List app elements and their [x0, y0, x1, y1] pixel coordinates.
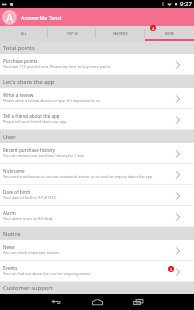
button[interactable]: Date of birth [0, 185, 194, 206]
button[interactable]: Back [49, 295, 63, 309]
staticText: Your alarm is set on 8:0 daily. [3, 216, 54, 221]
staticText: User [3, 133, 16, 141]
button[interactable]: TOP 30 [48, 26, 96, 41]
staticText: Nickname [3, 168, 25, 174]
staticText: Please write a review about our app. It'… [3, 98, 101, 103]
button[interactable]: Purchase points [0, 54, 194, 75]
staticText: Total points [3, 44, 35, 52]
staticText: You need a nickname to use our occasiona… [3, 174, 154, 179]
staticText: Write a review [3, 92, 34, 98]
staticText: AnswerMe Tarot [21, 14, 62, 21]
staticText: News [3, 244, 15, 250]
button[interactable]: Recent apps [131, 295, 145, 309]
button[interactable]: News [0, 240, 194, 261]
button[interactable]: Write a review [0, 88, 194, 109]
button[interactable]: MORE [145, 26, 194, 41]
button[interactable]: FAVORITE [96, 26, 145, 41]
staticText: ALL [21, 32, 27, 36]
staticText: Let's share the app [3, 78, 55, 86]
staticText: You have 110 point(s) now. Please tap he… [3, 64, 112, 69]
staticText: Purchase points [3, 58, 38, 64]
staticText: 4 [152, 26, 155, 31]
staticText: Events [3, 265, 18, 271]
staticText: Customer support [3, 284, 53, 292]
button[interactable]: Events [0, 261, 194, 282]
staticText: Your date of birth is 9/14/1974. [3, 195, 57, 200]
button[interactable]: Alarm [0, 206, 194, 227]
staticText: You can check important notices. [3, 250, 61, 255]
button[interactable]: Recent purchase history [0, 143, 194, 164]
staticText: FAVORITE [113, 32, 128, 36]
staticText: You can review your purchase history for… [3, 153, 85, 158]
button[interactable]: Tell a friend about the app [0, 109, 194, 130]
button[interactable]: ALL [0, 26, 48, 41]
staticText: MORE [165, 32, 175, 36]
staticText: You can find out about the current ongoi… [3, 271, 92, 276]
staticText: TOP 30 [67, 32, 78, 36]
staticText: Date of birth [3, 189, 31, 195]
staticText: Tell a friend about the app [3, 113, 60, 119]
staticText: Notice [3, 230, 21, 238]
staticText: Alarm [3, 210, 16, 216]
button[interactable]: Home [90, 295, 104, 309]
staticText: Please tell your friend about our app. [3, 119, 68, 124]
staticText: Recent purchase history [3, 147, 55, 153]
staticText: A [6, 10, 14, 25]
staticText: 9:27 [180, 0, 192, 8]
staticText: 2 [170, 267, 173, 272]
button[interactable]: Nickname [0, 164, 194, 185]
